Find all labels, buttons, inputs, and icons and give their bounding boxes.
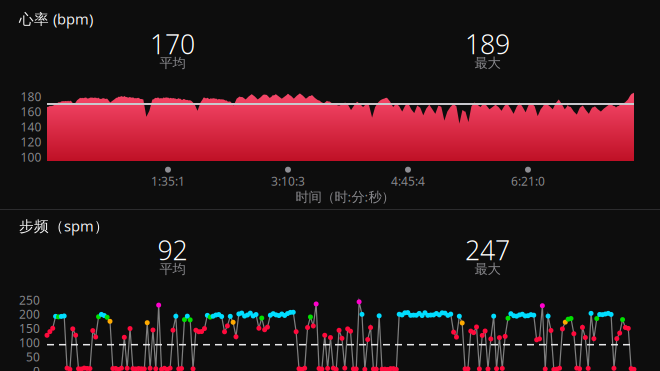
staticText: 120 [20,134,41,150]
staticText: 247 [465,232,510,268]
staticText: 6:21:0 [511,173,545,189]
staticText: 步频（spm） [19,216,109,235]
staticText: 1:35:1 [151,173,185,189]
staticText: 92 [157,232,187,268]
staticText: 4:45:4 [391,173,425,189]
staticText: 180 [20,89,41,104]
staticText: 100 [19,335,40,350]
staticText: 189 [465,26,510,62]
staticText: 3:10:3 [271,173,305,189]
staticText: 100 [20,149,41,165]
staticText: 最大 [474,55,500,71]
staticText: 250 [19,292,40,308]
staticText: 160 [20,104,41,120]
staticText: 140 [20,119,41,135]
staticText: 150 [19,320,40,336]
staticText: 平均 [159,55,185,71]
staticText: 50 [26,349,40,365]
staticText: 200 [19,306,40,322]
staticText: 平均 [159,261,185,277]
staticText: 心率 (bpm) [19,9,93,28]
staticText: 最大 [474,261,500,277]
staticText: 0 [33,363,40,371]
staticText: 时间（时:分:秒） [295,188,394,205]
staticText: 170 [150,26,195,62]
